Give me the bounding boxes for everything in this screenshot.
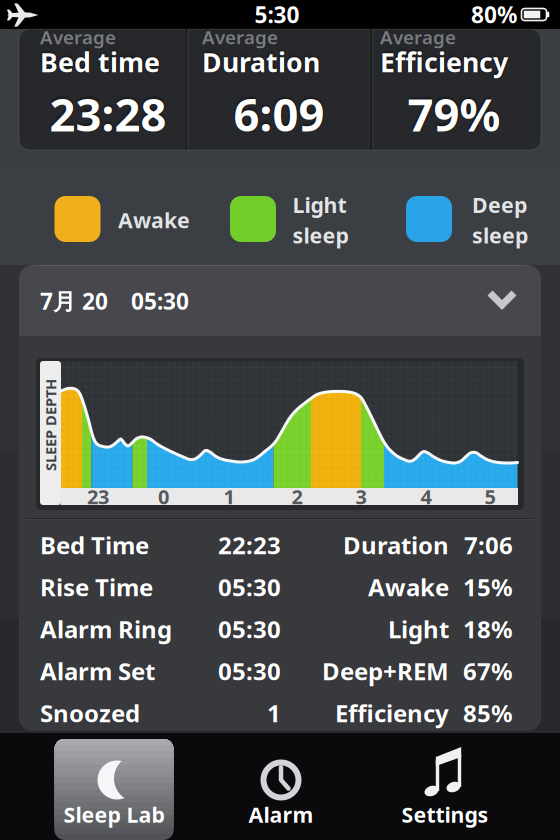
staticText: Light (292, 191, 346, 219)
staticText: 23:28 (49, 84, 166, 144)
staticText: Average (202, 25, 278, 49)
staticText: 0 (158, 483, 169, 510)
staticText: 2 (291, 483, 302, 510)
staticText: Sleep Lab (63, 800, 164, 829)
staticText: 6:09 (233, 84, 324, 144)
staticText: 05:30 (218, 655, 281, 687)
staticText: Average (380, 25, 456, 49)
staticText: Duration (202, 44, 320, 80)
staticText: 80% (471, 0, 517, 29)
staticText: 85% (463, 697, 513, 729)
staticText: Bed Time (40, 529, 149, 561)
staticText: Rise Time (40, 571, 153, 603)
staticText: Efficiency (335, 697, 449, 729)
staticText: sleep (292, 221, 348, 249)
staticText: 4 (420, 483, 431, 510)
staticText: Settings (401, 800, 488, 829)
staticText: Snoozed (40, 697, 140, 729)
staticText: 15% (463, 571, 513, 603)
staticText: Efficiency (380, 44, 508, 80)
staticText: 23 (87, 483, 109, 510)
staticText: Alarm Ring (40, 613, 172, 645)
staticText: Awake (118, 206, 190, 234)
staticText: 79% (407, 84, 500, 144)
staticText: 7:06 (464, 529, 513, 561)
staticText: Average (40, 25, 116, 49)
staticText: 05:30 (218, 613, 281, 645)
staticText: SLEEP DEPTH (4, 415, 96, 435)
staticText: 22:23 (218, 529, 281, 561)
staticText: Duration (343, 529, 449, 561)
staticText: 1 (223, 483, 234, 510)
staticText: 5 (484, 483, 495, 510)
staticText: 05:30 (131, 286, 189, 316)
staticText: Awake (368, 571, 449, 603)
button[interactable]: Sleep Lab (0, 0, 560, 840)
staticText: Alarm Set (40, 655, 155, 687)
staticText: Deep+REM (322, 655, 449, 687)
staticText: Bed time (40, 44, 160, 80)
staticText: Alarm (248, 800, 313, 829)
button[interactable]: Collapse day (0, 0, 560, 840)
staticText: 5:30 (254, 0, 299, 29)
button[interactable]: Settings (0, 0, 560, 840)
button[interactable]: Alarm (0, 0, 560, 840)
staticText: sleep (472, 221, 528, 249)
staticText: Deep (472, 191, 527, 219)
staticText: 67% (463, 655, 513, 687)
staticText: Light (388, 613, 449, 645)
staticText: 1 (267, 697, 281, 729)
staticText: 3 (355, 483, 366, 510)
staticText: 18% (463, 613, 513, 645)
staticText: 7月 20 (40, 286, 108, 316)
staticText: 05:30 (218, 571, 281, 603)
